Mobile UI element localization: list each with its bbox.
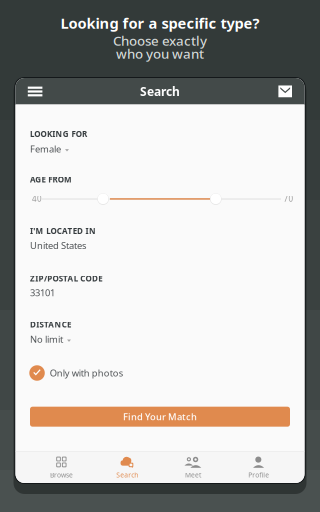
button[interactable]: Meet bbox=[160, 451, 226, 483]
staticText: who you want bbox=[116, 45, 204, 62]
button[interactable]: Messages bbox=[272, 78, 298, 104]
staticText: Choose exactly bbox=[113, 32, 207, 49]
button[interactable]: Menu bbox=[22, 78, 48, 104]
staticText: AGE FROM bbox=[30, 174, 72, 185]
staticText: Only with photos bbox=[50, 367, 123, 379]
button[interactable]: Only with photos bbox=[29, 365, 123, 381]
staticText: Profile bbox=[248, 471, 269, 479]
staticText: Search bbox=[116, 471, 138, 479]
staticText: Find Your Match bbox=[123, 410, 197, 423]
staticText: 70 bbox=[283, 193, 293, 204]
staticText: Browse bbox=[50, 471, 73, 479]
staticText: 40 bbox=[32, 193, 42, 204]
button[interactable]: Search bbox=[94, 451, 160, 483]
staticText: Search bbox=[140, 83, 180, 99]
staticText: 33101 bbox=[30, 286, 55, 299]
staticText: United States bbox=[30, 239, 86, 251]
button[interactable]: Profile bbox=[226, 451, 292, 483]
staticText: No limit bbox=[30, 333, 63, 345]
button[interactable]: Find Your Match bbox=[30, 407, 290, 427]
staticText: DISTANCE bbox=[30, 319, 71, 330]
staticText: Meet bbox=[185, 471, 201, 479]
staticText: ZIP/POSTAL CODE bbox=[30, 273, 102, 284]
staticText: Female bbox=[30, 143, 61, 155]
button[interactable]: Browse bbox=[28, 451, 94, 483]
staticText: Looking for a specific type? bbox=[60, 13, 259, 33]
staticText: LOOKING FOR bbox=[30, 129, 87, 139]
staticText: I'M LOCATED IN bbox=[30, 226, 96, 236]
